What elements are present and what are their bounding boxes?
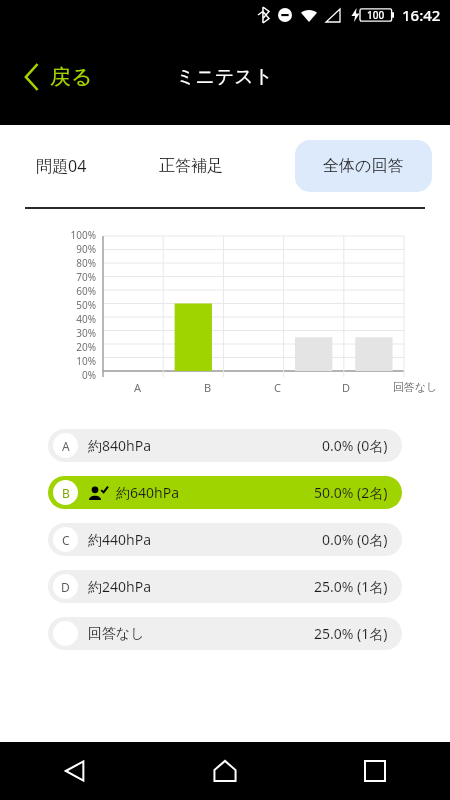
staticText: 0.0% (0名) [322,530,388,549]
staticText: 回答なし [88,625,145,643]
staticText: 回答なし [393,380,438,394]
staticText: 25.0% (1名) [314,624,388,643]
button[interactable]: Back [0,742,150,800]
button[interactable]: 問題04 [30,145,93,187]
staticText: ミニテスト [176,65,274,89]
staticText: 60% [76,284,96,298]
button[interactable]: 戻る [20,58,97,96]
button[interactable]: 正答補足 [153,146,229,186]
button[interactable]: Recent apps [300,742,450,800]
staticText: 全体の回答 [323,156,404,176]
staticText: 80% [76,256,96,270]
staticText: 50% [76,298,96,312]
staticText: 16:42 [402,5,441,25]
staticText: 20% [76,340,96,354]
staticText: 70% [76,270,96,284]
staticText: 戻る [50,64,93,90]
staticText: B [204,380,212,395]
staticText: 0.0% (0名) [322,436,388,455]
staticText: C [274,380,281,395]
button[interactable]: 回答なし [48,617,402,650]
button[interactable]: B [48,476,402,509]
staticText: 40% [76,312,96,326]
button[interactable]: 全体の回答 [295,140,432,192]
staticText: D [61,579,70,595]
button[interactable]: C [48,523,402,556]
staticText: 問題04 [36,155,87,177]
staticText: C [62,532,70,548]
staticText: 50.0% (2名) [314,483,388,502]
staticText: A [134,380,142,395]
staticText: D [342,380,351,395]
staticText: 100 [367,8,385,22]
button[interactable]: Home [150,742,300,800]
staticText: 100% [70,228,96,242]
staticText: 約840hPa [88,436,151,455]
staticText: 10% [76,354,96,368]
staticText: 90% [76,242,96,256]
staticText: 30% [76,326,96,340]
staticText: 約240hPa [88,577,151,596]
button[interactable]: D [48,570,402,603]
staticText: 約440hPa [88,530,151,549]
staticText: 0% [81,368,96,382]
staticText: A [62,438,70,454]
button[interactable]: A [48,429,402,462]
staticText: 25.0% (1名) [314,577,388,596]
staticText: 正答補足 [159,156,223,176]
staticText: B [62,485,70,501]
staticText: 約640hPa [116,483,179,502]
